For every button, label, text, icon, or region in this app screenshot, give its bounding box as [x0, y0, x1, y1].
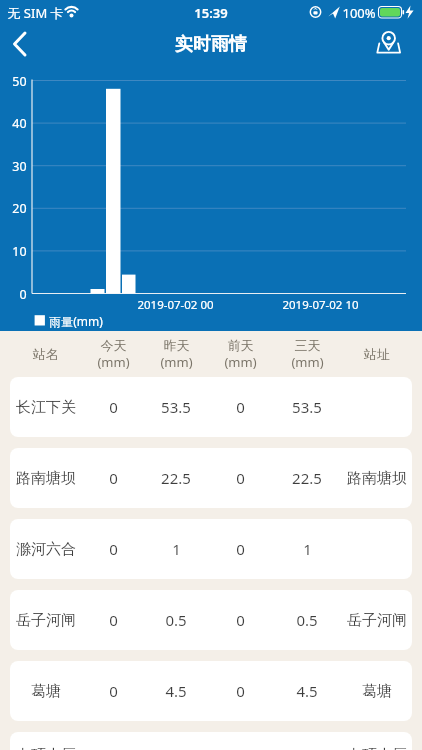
staticText: 0	[109, 681, 118, 701]
staticText: 站址	[364, 346, 390, 362]
button[interactable]: 滁河六合	[10, 519, 412, 579]
staticText: 岳子河闸	[16, 611, 76, 630]
staticText: 20	[12, 200, 27, 217]
staticText: 三天 (mm)	[291, 337, 324, 371]
staticText: 15:39	[194, 4, 228, 22]
staticText: 4.5	[296, 681, 318, 701]
staticText: 40	[12, 115, 27, 132]
staticText: 无 SIM 卡	[7, 4, 64, 22]
staticText: 葛塘	[31, 682, 61, 701]
staticText: 2019-07-02 00	[137, 297, 214, 313]
staticText: 0	[236, 539, 245, 559]
staticText: 4.5	[165, 681, 187, 701]
staticText: 路南塘坝	[16, 469, 76, 488]
button[interactable]: 岳子河闸	[10, 590, 412, 650]
staticText: 100%	[342, 4, 376, 22]
button[interactable]	[368, 25, 412, 63]
staticText: 岳子河闸	[347, 611, 407, 630]
staticText: 前天 (mm)	[224, 337, 257, 371]
staticText: 0	[19, 286, 27, 303]
staticText: 站名	[33, 346, 59, 362]
staticText: 0	[109, 468, 118, 488]
staticText: 今天 (mm)	[97, 337, 130, 371]
staticText: 0.5	[165, 610, 187, 630]
staticText: 中环大厦	[16, 746, 76, 750]
staticText: 53.5	[292, 397, 322, 417]
button[interactable]: 路南塘坝	[10, 448, 412, 508]
staticText: 0	[236, 681, 245, 701]
staticText: 0	[109, 610, 118, 630]
staticText: 22.5	[161, 468, 191, 488]
staticText: 滁河六合	[16, 540, 76, 559]
staticText: 实时雨情	[175, 33, 247, 55]
button[interactable]	[0, 25, 44, 63]
button[interactable]: 长江下关	[10, 377, 412, 437]
staticText: 葛塘	[362, 682, 392, 701]
staticText: 长江下关	[16, 398, 76, 417]
staticText: 中环大厦	[347, 746, 407, 750]
staticText: 0	[109, 397, 118, 417]
staticText: 1	[303, 539, 312, 559]
staticText: 0.5	[296, 610, 318, 630]
staticText: 53.5	[161, 397, 191, 417]
staticText: 50	[12, 73, 27, 90]
staticText: 0	[236, 468, 245, 488]
staticText: 1	[172, 539, 181, 559]
staticText: 昨天 (mm)	[160, 337, 193, 371]
staticText: 10	[12, 243, 27, 260]
staticText: 路南塘坝	[347, 469, 407, 488]
button[interactable]: 葛塘	[10, 661, 412, 721]
button[interactable]: 中环大厦	[10, 732, 412, 750]
staticText: 0	[236, 610, 245, 630]
staticText: 0	[109, 539, 118, 559]
staticText: 2019-07-02 10	[282, 297, 359, 313]
staticText: 22.5	[292, 468, 322, 488]
staticText: 0	[236, 397, 245, 417]
staticText: 雨量(mm)	[49, 313, 103, 329]
staticText: 30	[12, 158, 27, 175]
